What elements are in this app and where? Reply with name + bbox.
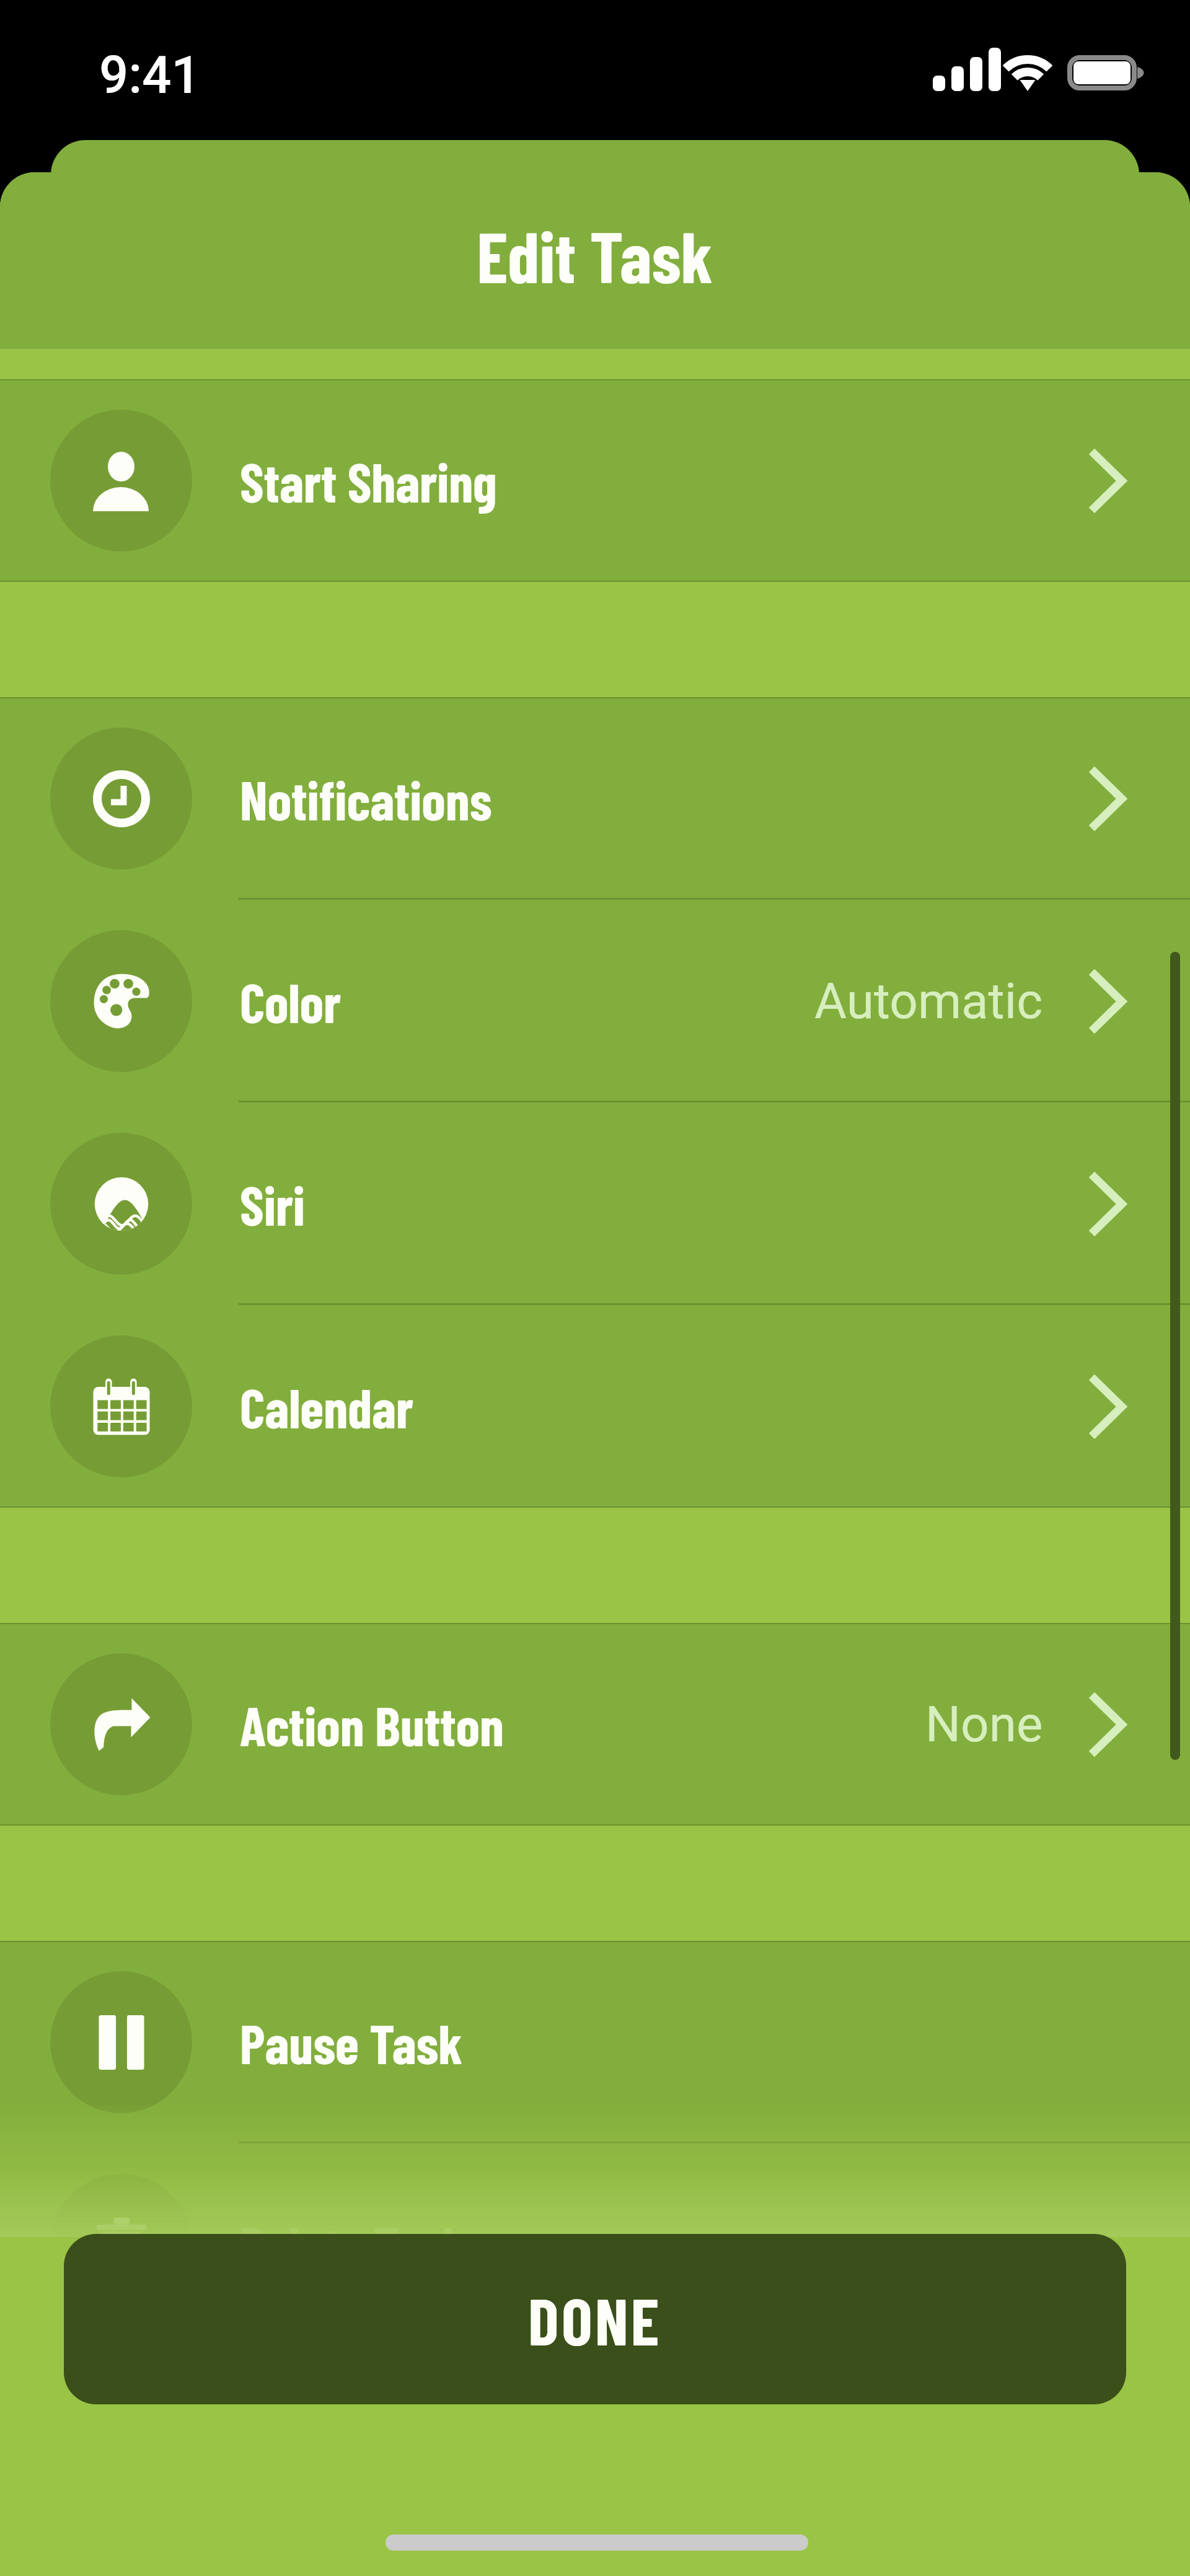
staticText: Automatic — [814, 972, 1043, 1031]
staticText: Pause Task — [240, 2010, 463, 2075]
button[interactable]: Color — [0, 900, 1190, 1102]
button[interactable]: Duplicate — [0, 2346, 1190, 2549]
staticText: 9:41 — [99, 45, 201, 105]
staticText: None — [925, 1695, 1043, 1754]
staticText: Calendar — [240, 1374, 413, 1439]
staticText: Notifications — [240, 767, 492, 831]
other: Open Color — [1091, 971, 1127, 1032]
button[interactable]: Start Sharing — [0, 379, 1190, 582]
button[interactable]: Action Button — [0, 1623, 1190, 1826]
other: Open Action Button — [1091, 1694, 1127, 1755]
staticText: Edit Task — [477, 212, 713, 297]
button[interactable]: Delete Task — [0, 2143, 1190, 2346]
staticText: DONE — [528, 2280, 662, 2358]
button[interactable]: Siri — [0, 1102, 1190, 1305]
staticText: Action Button — [240, 1692, 504, 1757]
button[interactable]: Notifications — [0, 697, 1190, 900]
staticText: Color — [240, 969, 342, 1034]
staticText: Delete Task — [240, 2213, 467, 2277]
button[interactable]: Calendar — [0, 1305, 1190, 1508]
other: Open Calendar — [1091, 1376, 1127, 1437]
other: Open Notifications — [1091, 768, 1127, 829]
other: Open Start Sharing — [1091, 451, 1127, 511]
staticText: Start Sharing — [240, 449, 497, 513]
staticText: Siri — [240, 1172, 305, 1236]
other: Open Siri — [1091, 1174, 1127, 1234]
button[interactable]: Pause Task — [0, 1941, 1190, 2143]
button[interactable]: DONE — [64, 2234, 1126, 2404]
